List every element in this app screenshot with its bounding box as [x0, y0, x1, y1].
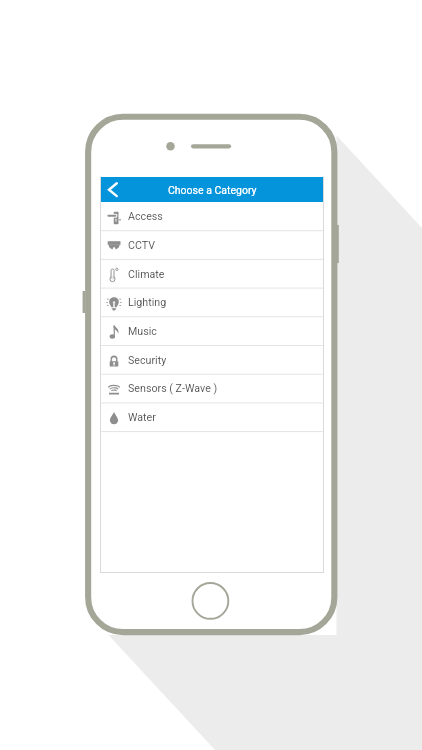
button[interactable] — [100, 374, 324, 403]
button[interactable] — [100, 403, 324, 432]
staticText: Sensors ( Z-Wave ) — [128, 382, 218, 395]
staticText: Choose a Category — [168, 184, 257, 196]
button[interactable]: Back — [100, 177, 125, 202]
staticText: CCTV — [128, 239, 156, 252]
staticText: Music — [128, 325, 157, 338]
staticText: Access — [128, 210, 163, 223]
button[interactable] — [100, 288, 324, 317]
button[interactable] — [100, 317, 324, 346]
staticText: Security — [128, 354, 167, 367]
staticText: Water — [128, 411, 156, 424]
staticText: Climate — [128, 268, 165, 281]
button[interactable] — [100, 202, 324, 231]
button[interactable] — [100, 346, 324, 375]
button[interactable] — [100, 231, 324, 260]
staticText: Lighting — [128, 296, 167, 309]
button[interactable] — [100, 259, 324, 288]
